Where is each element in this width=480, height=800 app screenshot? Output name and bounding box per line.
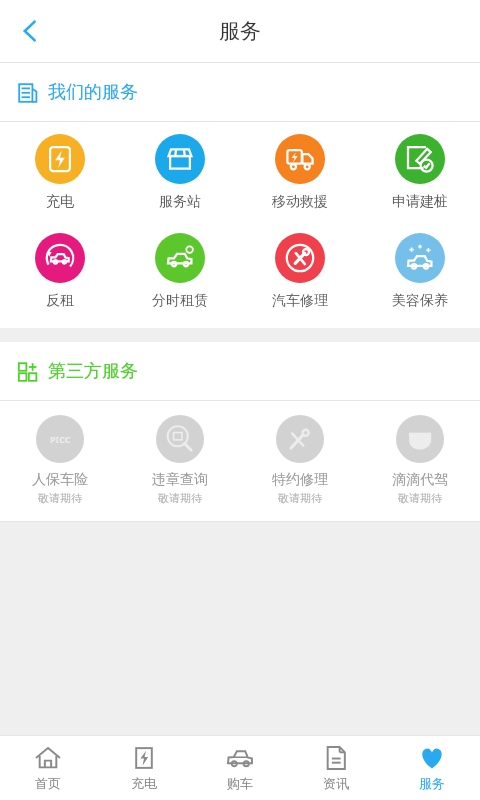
button[interactable]: 分时租赁: [120, 229, 240, 314]
staticText: 充电: [131, 775, 157, 791]
staticText: 购车: [227, 775, 253, 791]
button[interactable]: 服务: [384, 736, 480, 800]
staticText: PICC: [50, 433, 71, 445]
staticText: 服务站: [159, 193, 201, 211]
staticText: 特约修理: [272, 471, 328, 489]
staticText: 人保车险: [32, 471, 88, 489]
staticText: 敬请期待: [38, 491, 82, 505]
staticText: 敬请期待: [398, 491, 442, 505]
staticText: 申请建桩: [392, 193, 448, 211]
button[interactable]: 特约修理: [240, 415, 360, 505]
button[interactable]: 充电: [96, 736, 192, 800]
button[interactable]: 服务站: [120, 130, 240, 215]
staticText: 服务: [419, 775, 445, 791]
button[interactable]: 资讯: [288, 736, 384, 800]
staticText: 我们的服务: [48, 81, 138, 104]
button[interactable]: 违章查询: [120, 415, 240, 505]
button[interactable]: 滴滴代驾: [360, 415, 480, 505]
staticText: 首页: [35, 775, 61, 791]
staticText: 敬请期待: [278, 491, 322, 505]
staticText: 反租: [46, 292, 74, 310]
button[interactable]: 移动救援: [240, 130, 360, 215]
staticText: 违章查询: [152, 471, 208, 489]
staticText: 美容保养: [392, 292, 448, 310]
staticText: 服务: [219, 18, 261, 44]
staticText: 资讯: [323, 775, 349, 791]
button[interactable]: 反租: [0, 229, 120, 314]
button[interactable]: Back: [6, 7, 54, 55]
staticText: 滴滴代驾: [392, 471, 448, 489]
button[interactable]: 美容保养: [360, 229, 480, 314]
button[interactable]: 汽车修理: [240, 229, 360, 314]
button[interactable]: 申请建桩: [360, 130, 480, 215]
button[interactable]: PICC: [0, 415, 120, 505]
button[interactable]: 充电: [0, 130, 120, 215]
button[interactable]: 首页: [0, 736, 96, 800]
button[interactable]: 购车: [192, 736, 288, 800]
staticText: 分时租赁: [152, 292, 208, 310]
staticText: 汽车修理: [272, 292, 328, 310]
staticText: 充电: [46, 193, 74, 211]
staticText: 移动救援: [272, 193, 328, 211]
staticText: 第三方服务: [48, 360, 138, 383]
staticText: 敬请期待: [158, 491, 202, 505]
